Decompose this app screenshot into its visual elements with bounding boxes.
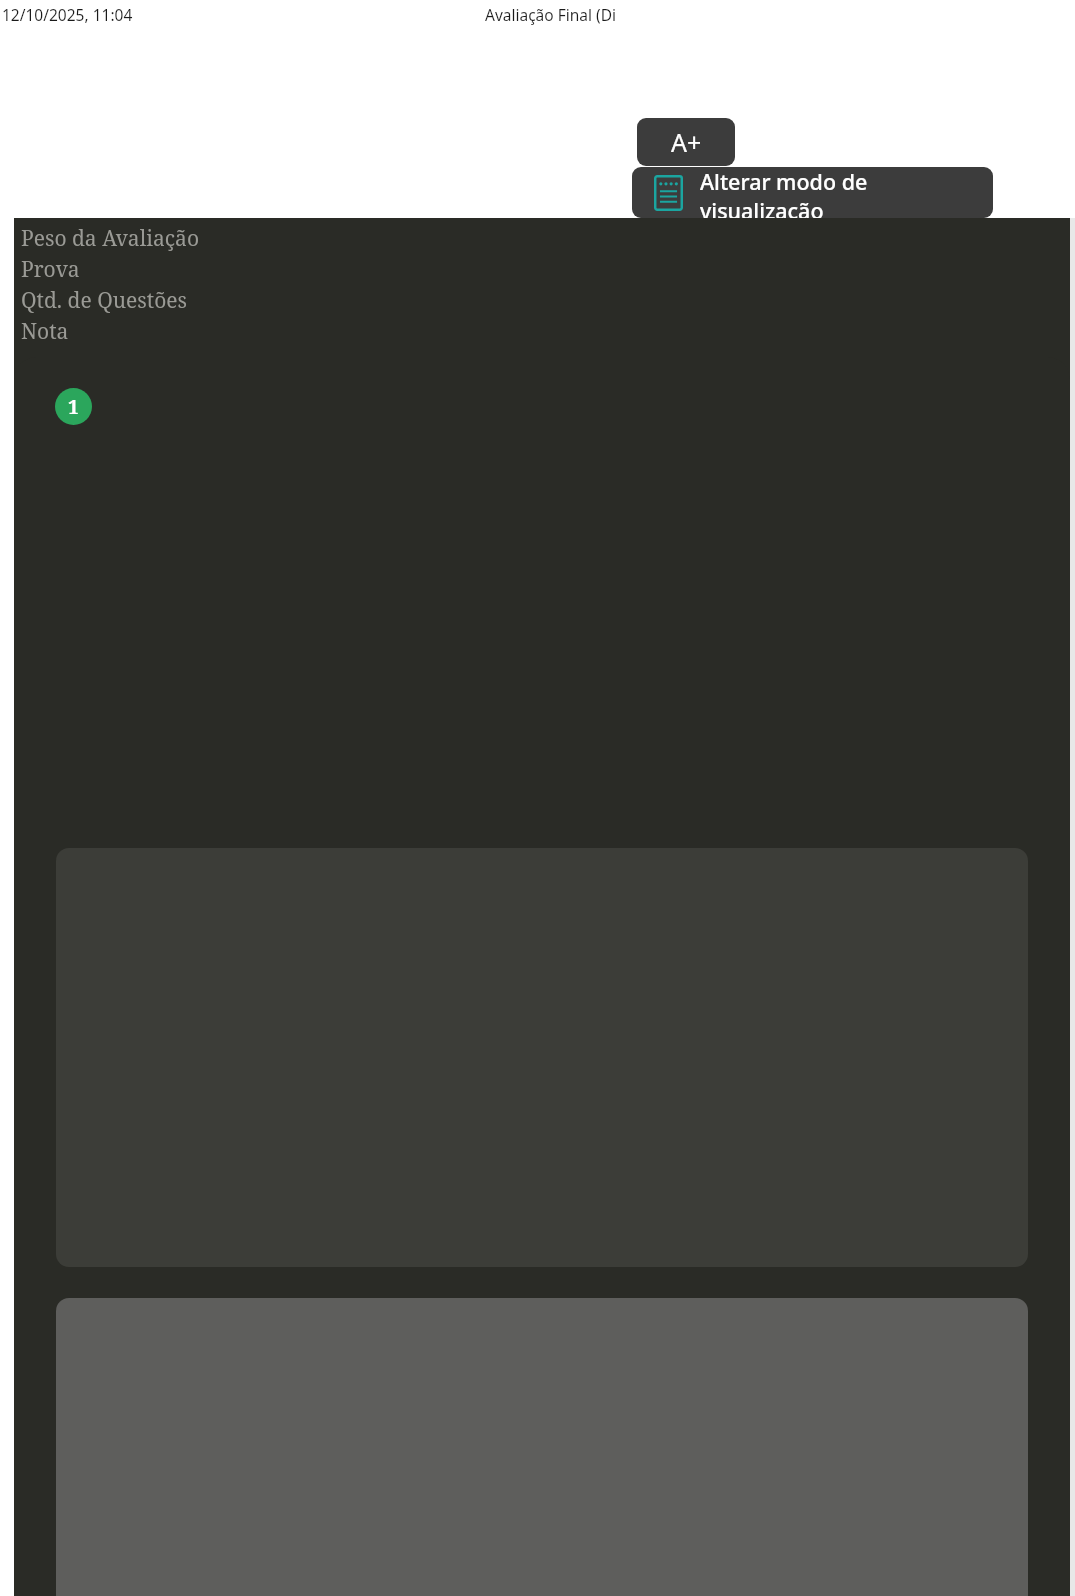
staticText: Nota (21, 317, 69, 346)
staticText: Qtd. de Questões (21, 286, 188, 315)
button[interactable]: Alterar modo de visualização (632, 167, 993, 218)
staticText: 12/10/2025, 11:04 (2, 4, 133, 25)
button[interactable]: 1 (14, 357, 1070, 1596)
staticText: Alterar modo de visualização (700, 167, 993, 218)
button[interactable]: Aumentar fonte (637, 118, 735, 166)
staticText: A+ (671, 125, 702, 159)
button[interactable]: 1 (55, 388, 92, 425)
staticText: 1 (68, 394, 79, 420)
staticText: Prova (21, 255, 80, 284)
staticText: Peso da Avaliação (21, 224, 199, 253)
staticText: Avaliação Final (Di (485, 4, 617, 25)
other: Alterar modo de visualização (654, 175, 683, 211)
